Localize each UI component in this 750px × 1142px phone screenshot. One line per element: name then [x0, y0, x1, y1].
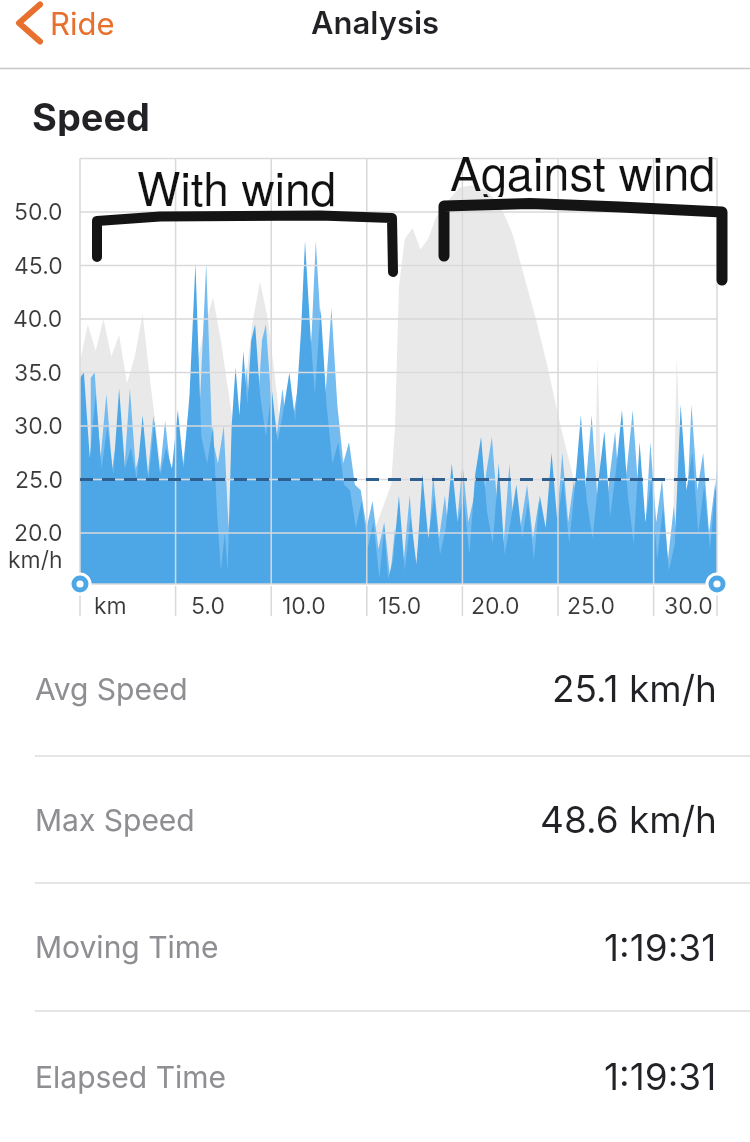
- staticText: 20.0: [14, 519, 63, 547]
- staticText: km/h: [8, 546, 63, 574]
- staticText: 25.0: [567, 592, 615, 620]
- button[interactable]: Ride: [14, 0, 144, 48]
- staticText: 20.0: [471, 592, 520, 620]
- staticText: Speed: [32, 94, 151, 136]
- staticText: 30.0: [14, 412, 63, 440]
- staticText: 50.0: [14, 198, 63, 226]
- staticText: km: [94, 592, 127, 620]
- button[interactable]: Moving Time: [0, 883, 750, 1011]
- staticText: Avg Speed: [35, 671, 188, 707]
- button[interactable]: Avg Speed: [0, 621, 750, 756]
- staticText: 35.0: [14, 359, 63, 387]
- staticText: 48.6 km/h: [540, 797, 717, 842]
- staticText: Against wind: [450, 137, 716, 197]
- button[interactable]: Max Speed: [0, 756, 750, 883]
- button[interactable]: Elapsed Time: [0, 1011, 750, 1142]
- staticText: 10.0: [282, 592, 326, 620]
- staticText: 30.0: [664, 592, 713, 620]
- staticText: With wind: [137, 153, 337, 213]
- staticText: 25.0: [15, 466, 63, 494]
- staticText: 25.1 km/h: [552, 666, 717, 711]
- staticText: Ride: [50, 5, 115, 43]
- staticText: 5.0: [191, 592, 225, 620]
- staticText: Max Speed: [35, 802, 195, 838]
- staticText: 45.0: [14, 252, 63, 280]
- staticText: 1:19:31: [604, 925, 717, 970]
- staticText: 40.0: [13, 305, 63, 333]
- staticText: 1:19:31: [604, 1054, 717, 1099]
- staticText: Analysis: [311, 4, 440, 42]
- staticText: Moving Time: [35, 929, 219, 965]
- staticText: 15.0: [378, 592, 422, 620]
- staticText: Elapsed Time: [35, 1059, 227, 1095]
